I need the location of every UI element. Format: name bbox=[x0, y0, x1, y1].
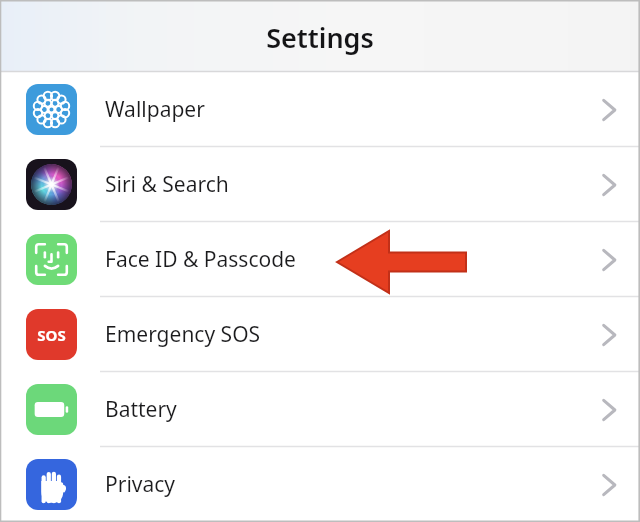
staticText: Settings bbox=[266, 19, 374, 56]
button[interactable]: SOS bbox=[0, 297, 640, 372]
staticText: Privacy bbox=[105, 470, 176, 499]
staticText: Siri & Search bbox=[105, 170, 229, 199]
staticText: SOS bbox=[37, 325, 66, 345]
staticText: Battery bbox=[105, 395, 177, 424]
button[interactable]: Siri & Search bbox=[0, 147, 640, 222]
staticText: Face ID & Passcode bbox=[105, 245, 296, 274]
button[interactable]: Wallpaper bbox=[0, 72, 640, 147]
button[interactable]: Face ID & Passcode bbox=[0, 222, 640, 297]
staticText: Emergency SOS bbox=[105, 320, 261, 349]
button[interactable]: Privacy bbox=[0, 447, 640, 522]
staticText: Wallpaper bbox=[105, 95, 205, 124]
button[interactable]: Battery bbox=[0, 372, 640, 447]
